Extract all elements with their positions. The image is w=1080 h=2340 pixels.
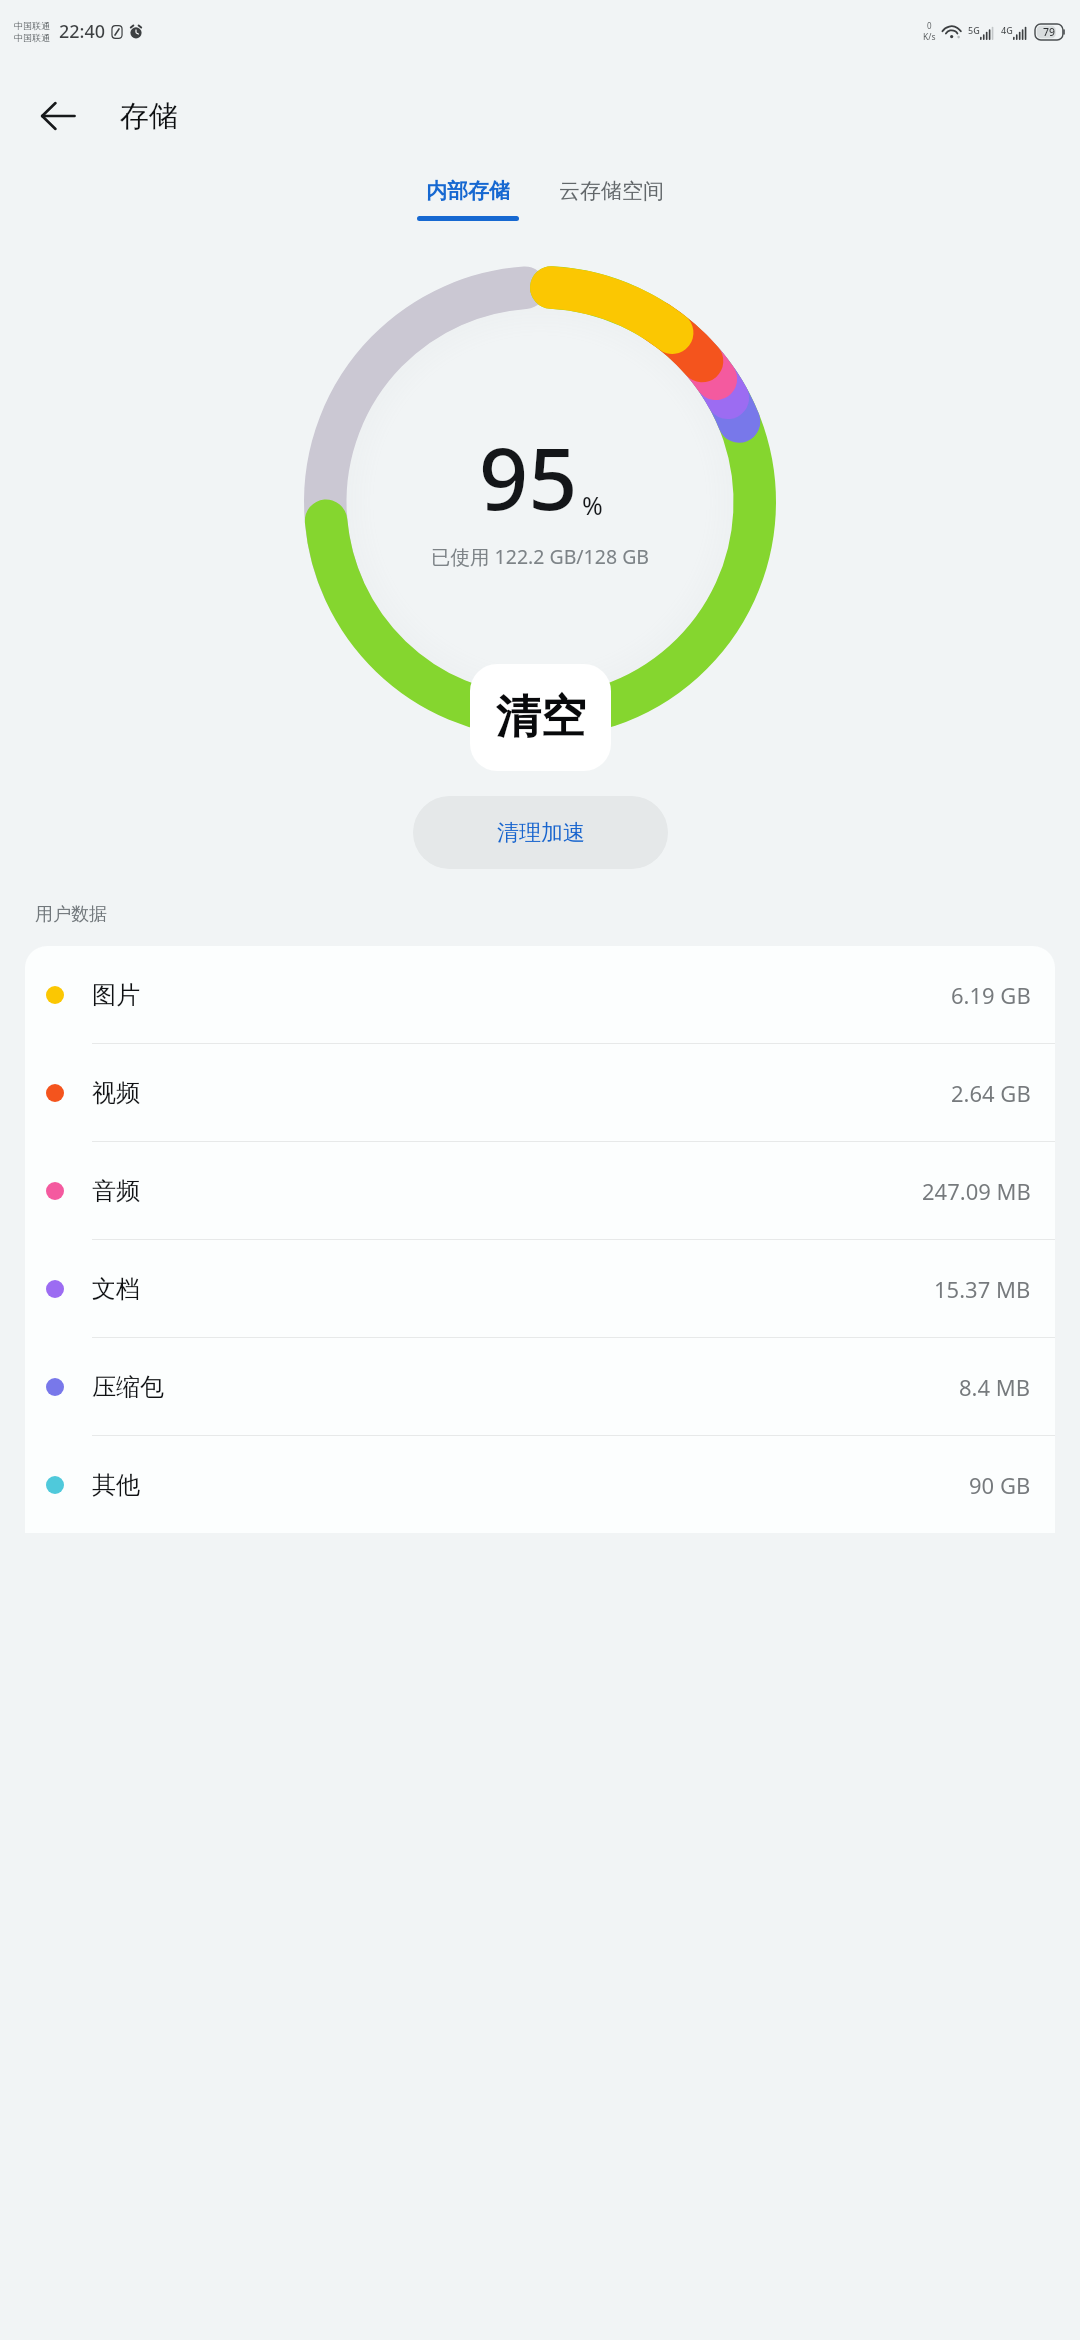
staticText: 存储 — [120, 98, 178, 135]
staticText: 0 — [927, 20, 932, 31]
button[interactable]: 云存储空间 — [549, 170, 674, 212]
staticText: 2.64 GB — [951, 1078, 1031, 1108]
staticText: 6.19 GB — [951, 980, 1031, 1010]
button[interactable]: 清空 — [470, 664, 611, 771]
staticText: 清理加速 — [497, 819, 585, 847]
staticText: 内部存储 — [426, 178, 510, 204]
staticText: 云存储空间 — [559, 178, 664, 204]
button[interactable]: 清理加速 — [413, 796, 668, 869]
staticText: 15.37 MB — [934, 1274, 1031, 1304]
button[interactable]: 文档 — [25, 1240, 1055, 1337]
staticText: 其他 — [92, 1470, 140, 1500]
staticText: 90 GB — [969, 1470, 1031, 1500]
staticText: 已使用 122.2 GB/128 GB — [431, 543, 650, 570]
button[interactable]: 压缩包 — [25, 1338, 1055, 1435]
staticText: 清空 — [496, 689, 586, 746]
staticText: 5G — [968, 24, 980, 36]
staticText: 8.4 MB — [959, 1372, 1031, 1402]
staticText: 中国联通 — [14, 32, 50, 43]
staticText: K/s — [923, 31, 936, 43]
button[interactable]: 其他 — [25, 1436, 1055, 1533]
button[interactable]: 内部存储 — [407, 170, 529, 229]
staticText: 95 — [479, 418, 578, 535]
staticText: 79 — [1043, 25, 1056, 39]
button[interactable]: 图片 — [25, 946, 1055, 1043]
staticText: 图片 — [92, 980, 140, 1010]
staticText: 247.09 MB — [922, 1176, 1031, 1206]
button[interactable]: 视频 — [25, 1044, 1055, 1141]
staticText: 音频 — [92, 1176, 140, 1206]
staticText: % — [582, 488, 603, 522]
staticText: 文档 — [92, 1274, 140, 1304]
staticText: 压缩包 — [92, 1372, 164, 1402]
button[interactable]: Back — [28, 86, 88, 146]
button[interactable]: 音频 — [25, 1142, 1055, 1239]
staticText: 用户数据 — [35, 903, 107, 926]
staticText: 中国联通 — [14, 20, 50, 31]
staticText: 22:40 — [59, 19, 106, 44]
staticText: 视频 — [92, 1078, 140, 1108]
staticText: 4G — [1001, 24, 1013, 36]
